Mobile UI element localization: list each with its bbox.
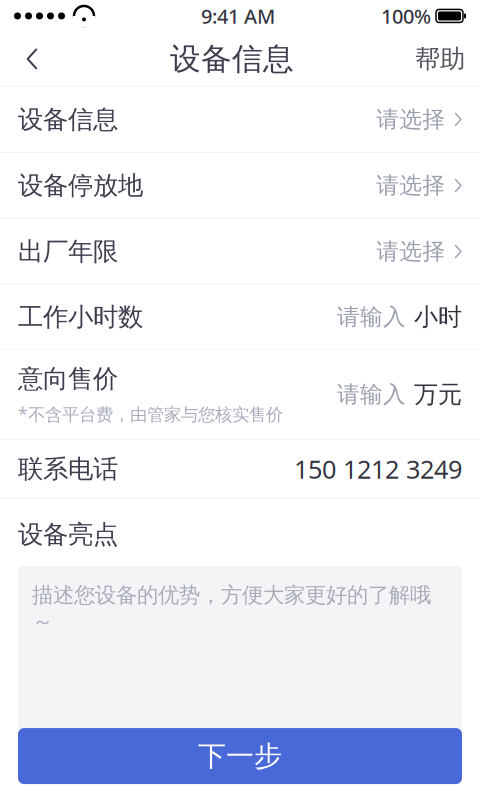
staticText: 100%: [381, 3, 431, 29]
button[interactable]: 联系电话: [0, 440, 480, 498]
staticText: 意向售价: [18, 363, 118, 394]
staticText: 设备停放地: [18, 170, 143, 201]
button[interactable]: 出厂年限: [0, 219, 480, 284]
staticText: 请选择: [376, 171, 445, 199]
staticText: *不含平台费，由管家与您核实售价: [18, 402, 283, 425]
staticText: 设备信息: [170, 40, 294, 78]
button[interactable]: 下一步: [18, 728, 462, 784]
staticText: 请选择: [376, 237, 445, 265]
staticText: 帮助: [415, 43, 465, 74]
staticText: 万元: [414, 380, 462, 409]
staticText: 出厂年限: [18, 236, 118, 267]
staticText: 150 1212 3249: [294, 452, 462, 486]
staticText: 9:41 AM: [201, 3, 275, 29]
button[interactable]: 描述您设备的优势，方便大家更好的了解哦～: [18, 566, 462, 728]
button[interactable]: 返回: [10, 37, 54, 81]
staticText: 设备亮点: [18, 519, 118, 550]
staticText: 请输入: [337, 380, 406, 408]
button[interactable]: 设备信息: [0, 87, 480, 152]
button[interactable]: 工作小时数: [0, 285, 480, 349]
staticText: 请选择: [376, 105, 445, 133]
button[interactable]: 帮助: [410, 37, 470, 81]
staticText: 工作小时数: [18, 301, 143, 332]
button[interactable]: 设备停放地: [0, 153, 480, 218]
staticText: 请输入: [337, 303, 406, 331]
staticText: 联系电话: [18, 453, 118, 484]
staticText: 小时: [414, 302, 462, 332]
staticText: 描述您设备的优势，方便大家更好的了解哦～: [32, 582, 431, 634]
button[interactable]: 意向售价: [0, 350, 480, 439]
staticText: 设备信息: [18, 104, 118, 135]
staticText: 下一步: [198, 739, 282, 773]
